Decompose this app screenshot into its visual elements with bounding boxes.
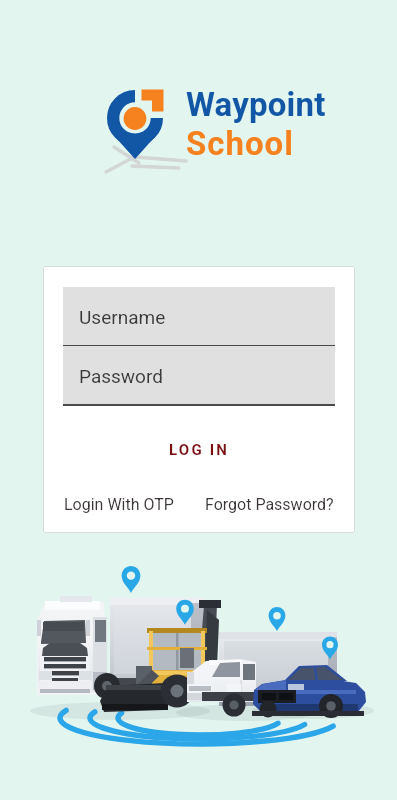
staticText: Username [79,306,166,328]
staticText: LOG IN [169,441,230,459]
staticText: Waypoint [186,85,326,124]
staticText: School [186,124,294,163]
button[interactable]: LOG IN [43,433,355,467]
button[interactable]: Username [63,287,335,346]
staticText: Forgot Password? [205,495,334,514]
staticText: Login With OTP [64,495,174,514]
button[interactable]: Login With OTP [64,495,174,514]
staticText: Password [79,365,163,387]
button[interactable]: Forgot Password? [205,495,334,514]
other: Waypoint School logo [100,80,190,175]
button[interactable]: Password [63,346,335,406]
